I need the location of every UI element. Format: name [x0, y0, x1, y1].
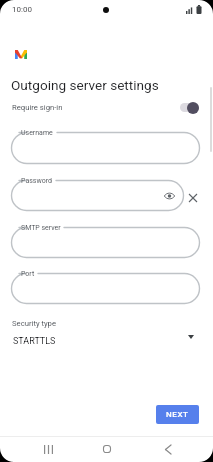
staticText: NEXT [166, 410, 189, 419]
button[interactable]: Clear [185, 190, 201, 206]
button[interactable]: Security type [0, 314, 213, 350]
button[interactable]: Recent apps [32, 436, 64, 462]
button[interactable]: SMTP server [11, 227, 200, 258]
staticText: Outgoing server settings [11, 77, 159, 93]
staticText: Password [21, 177, 52, 185]
staticText: 10:00 [12, 5, 32, 14]
staticText: Username [21, 129, 53, 137]
staticText: Port [21, 270, 35, 278]
button[interactable]: Require sign-in [0, 97, 213, 118]
button[interactable]: Password [11, 180, 184, 211]
staticText: STARTTLS [13, 336, 56, 347]
button[interactable]: Username [11, 132, 200, 164]
staticText: Security type [12, 319, 56, 328]
button[interactable]: Back [152, 436, 184, 462]
staticText: SMTP server [21, 224, 61, 232]
staticText: Require sign-in [12, 103, 63, 112]
button[interactable]: Home [91, 436, 123, 462]
button[interactable]: NEXT [156, 405, 199, 424]
button[interactable]: Show password [162, 189, 176, 203]
button[interactable]: Port [11, 273, 200, 304]
